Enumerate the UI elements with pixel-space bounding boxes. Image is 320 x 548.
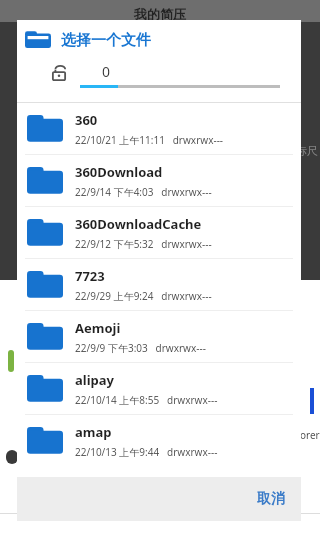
staticText: 选择一个文件: [61, 31, 151, 50]
staticText: amap: [75, 423, 112, 441]
button[interactable]: amap: [17, 415, 301, 466]
staticText: 取消: [257, 490, 285, 508]
staticText: 22/9/14 下午4:03 drwxrwx---: [75, 185, 212, 199]
button[interactable]: 取消: [241, 480, 301, 518]
staticText: 我的简压: [134, 6, 186, 22]
staticText: 22/9/29 上午9:24 drwxrwx---: [75, 289, 212, 303]
staticText: 7723: [75, 267, 105, 285]
button[interactable]: 7723: [17, 259, 301, 310]
button[interactable]: alipay: [17, 363, 301, 414]
staticText: 360Download: [75, 163, 163, 181]
staticText: 360DownloadCache: [75, 215, 202, 233]
staticText: 22/9/12 下午5:32 drwxrwx---: [75, 237, 212, 251]
button[interactable]: Aemoji: [17, 311, 301, 362]
staticText: 0: [102, 62, 111, 81]
button[interactable]: 360: [17, 103, 301, 154]
staticText: 22/10/13 上午9:44 drwxrwx---: [75, 445, 218, 459]
staticText: alipay: [75, 371, 114, 389]
staticText: Aemoji: [75, 319, 121, 337]
staticText: 22/9/9 下午3:03 drwxrwx---: [75, 341, 206, 355]
staticText: orer: [300, 428, 320, 442]
button[interactable]: 360DownloadCache: [17, 207, 301, 258]
staticText: 22/10/14 上午8:55 drwxrwx---: [75, 393, 218, 407]
button[interactable]: 360Download: [17, 155, 301, 206]
staticText: 360: [75, 111, 98, 129]
staticText: 块标尺: [285, 144, 318, 158]
staticText: 22/10/21 上午11:11 drwxrwx---: [75, 133, 224, 147]
